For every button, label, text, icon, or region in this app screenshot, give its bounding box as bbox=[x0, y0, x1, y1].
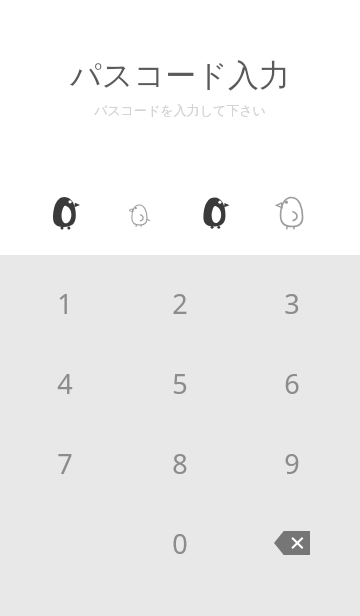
staticText: 3 bbox=[284, 285, 300, 322]
staticText: 5 bbox=[172, 365, 188, 402]
button[interactable]: 3 bbox=[230, 263, 354, 343]
button[interactable]: 1 bbox=[0, 263, 130, 343]
button[interactable]: 0 bbox=[130, 503, 230, 583]
staticText: パスコードを入力して下さい bbox=[94, 102, 266, 118]
staticText: 2 bbox=[172, 285, 188, 322]
button[interactable]: 2 bbox=[130, 263, 230, 343]
staticText: 9 bbox=[284, 445, 300, 482]
button[interactable]: 6 bbox=[230, 343, 354, 423]
button[interactable]: 5 bbox=[130, 343, 230, 423]
staticText: 8 bbox=[172, 445, 188, 482]
staticText: 7 bbox=[57, 445, 73, 482]
staticText: 4 bbox=[57, 365, 73, 402]
button[interactable]: 9 bbox=[230, 423, 354, 503]
button[interactable]: 8 bbox=[130, 423, 230, 503]
button[interactable]: 7 bbox=[0, 423, 130, 503]
staticText: パスコード入力 bbox=[70, 56, 290, 95]
button[interactable]: 4 bbox=[0, 343, 130, 423]
staticText: 0 bbox=[172, 525, 188, 562]
button[interactable]: Delete bbox=[230, 503, 354, 583]
staticText: 1 bbox=[57, 285, 73, 322]
staticText: 6 bbox=[284, 365, 300, 402]
